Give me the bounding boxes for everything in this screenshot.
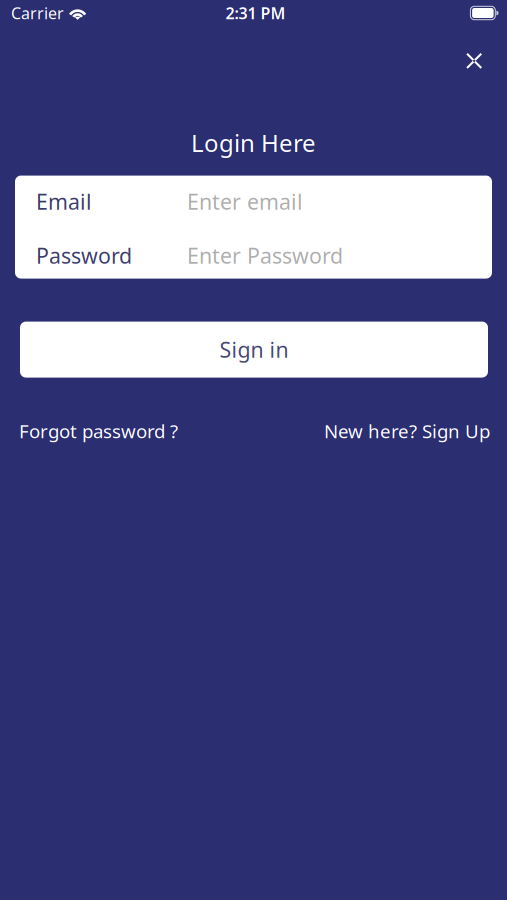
staticText: Password [36, 241, 132, 270]
staticText: 2:31 PM [225, 2, 285, 24]
button[interactable]: Close [455, 42, 493, 80]
button[interactable]: New here? Sign Up [324, 419, 490, 443]
staticText: Enter Password [187, 241, 343, 270]
staticText: Enter email [187, 187, 303, 216]
staticText: Email [36, 187, 92, 216]
staticText: Login Here [191, 127, 316, 159]
button[interactable]: Forgot password ? [19, 419, 178, 443]
staticText: Carrier [11, 2, 64, 24]
staticText: Forgot password ? [19, 419, 178, 443]
staticText: New here? Sign Up [324, 419, 490, 443]
staticText: Sign in [219, 335, 288, 364]
button[interactable]: Sign in [20, 322, 488, 378]
